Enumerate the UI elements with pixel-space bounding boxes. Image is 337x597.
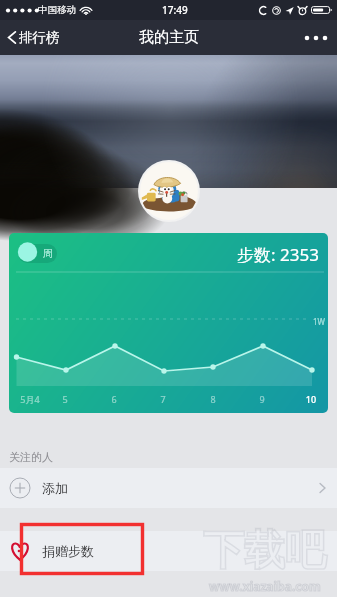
staticText: 1W (313, 316, 326, 327)
button[interactable]: More options (295, 20, 337, 55)
staticText: 周 (43, 247, 53, 260)
button[interactable]: 排行榜 (6, 20, 60, 55)
staticText: 10 (295, 393, 327, 405)
button[interactable]: Profile avatar (140, 162, 198, 220)
staticText: 5 (49, 393, 81, 405)
staticText: 6 (98, 393, 130, 405)
button[interactable]: 捐赠步数 (0, 531, 337, 571)
button[interactable]: 周 (18, 244, 57, 263)
staticText: 下载吧 (203, 525, 326, 577)
staticText: 添加 (42, 480, 68, 496)
staticText: 5月4 (14, 393, 46, 405)
staticText: www.xiazaiba.com (209, 578, 321, 594)
staticText: 步数: 2353 (237, 243, 319, 263)
staticText: 7 (147, 393, 179, 405)
staticText: 排行榜 (19, 29, 60, 46)
staticText: 关注的人 (9, 450, 53, 464)
staticText: 中国移动 (38, 4, 76, 16)
staticText: 8 (197, 393, 229, 405)
staticText: 9 (246, 393, 278, 405)
staticText: 捐赠步数 (42, 543, 94, 559)
button[interactable]: 周 (9, 233, 328, 413)
staticText: 17:49 (162, 3, 188, 17)
button[interactable]: 添加 (0, 468, 337, 508)
staticText: 我的主页 (139, 28, 199, 47)
